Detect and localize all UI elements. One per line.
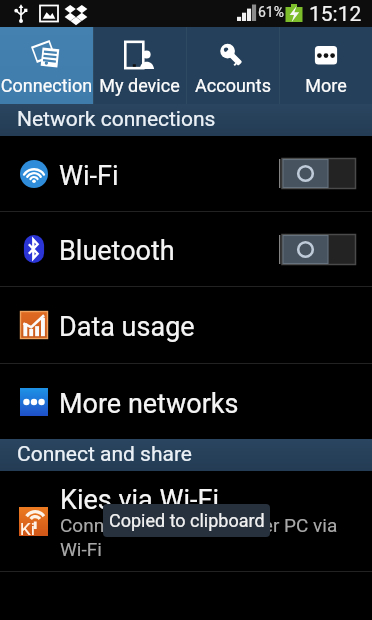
staticText: Ki — [20, 519, 35, 539]
staticText: Wi-Fi — [59, 160, 119, 192]
button[interactable]: Toggle — [279, 157, 357, 190]
button[interactable]: More — [279, 27, 372, 104]
staticText: More networks — [59, 388, 239, 420]
staticText: Data usage — [59, 311, 195, 343]
staticText: Copied to clipboard — [109, 510, 265, 531]
button[interactable]: Bluetooth — [0, 212, 372, 286]
button[interactable]: Wi-Fi — [0, 136, 372, 211]
button[interactable]: Data usage — [0, 287, 372, 363]
staticText: 61% — [258, 4, 284, 20]
button[interactable]: My device — [93, 27, 186, 104]
staticText: 15:12 — [309, 2, 362, 27]
staticText: My device — [99, 75, 180, 96]
staticText: Bluetooth — [59, 235, 175, 267]
staticText: Network connections — [17, 107, 216, 132]
button[interactable]: More networks — [0, 364, 372, 439]
button[interactable]: Connections — [0, 27, 93, 104]
staticText: Connect to your computer PC via Wi-Fi — [60, 514, 347, 561]
staticText: Connect and share — [17, 442, 193, 467]
button[interactable]: Accounts — [186, 27, 279, 104]
staticText: Connections — [0, 75, 93, 96]
staticText: Accounts — [195, 75, 271, 96]
staticText: More — [305, 75, 347, 96]
staticText: Kies via Wi-Fi — [60, 484, 219, 516]
button[interactable]: Ki — [0, 471, 372, 571]
button[interactable]: Toggle — [279, 233, 357, 266]
